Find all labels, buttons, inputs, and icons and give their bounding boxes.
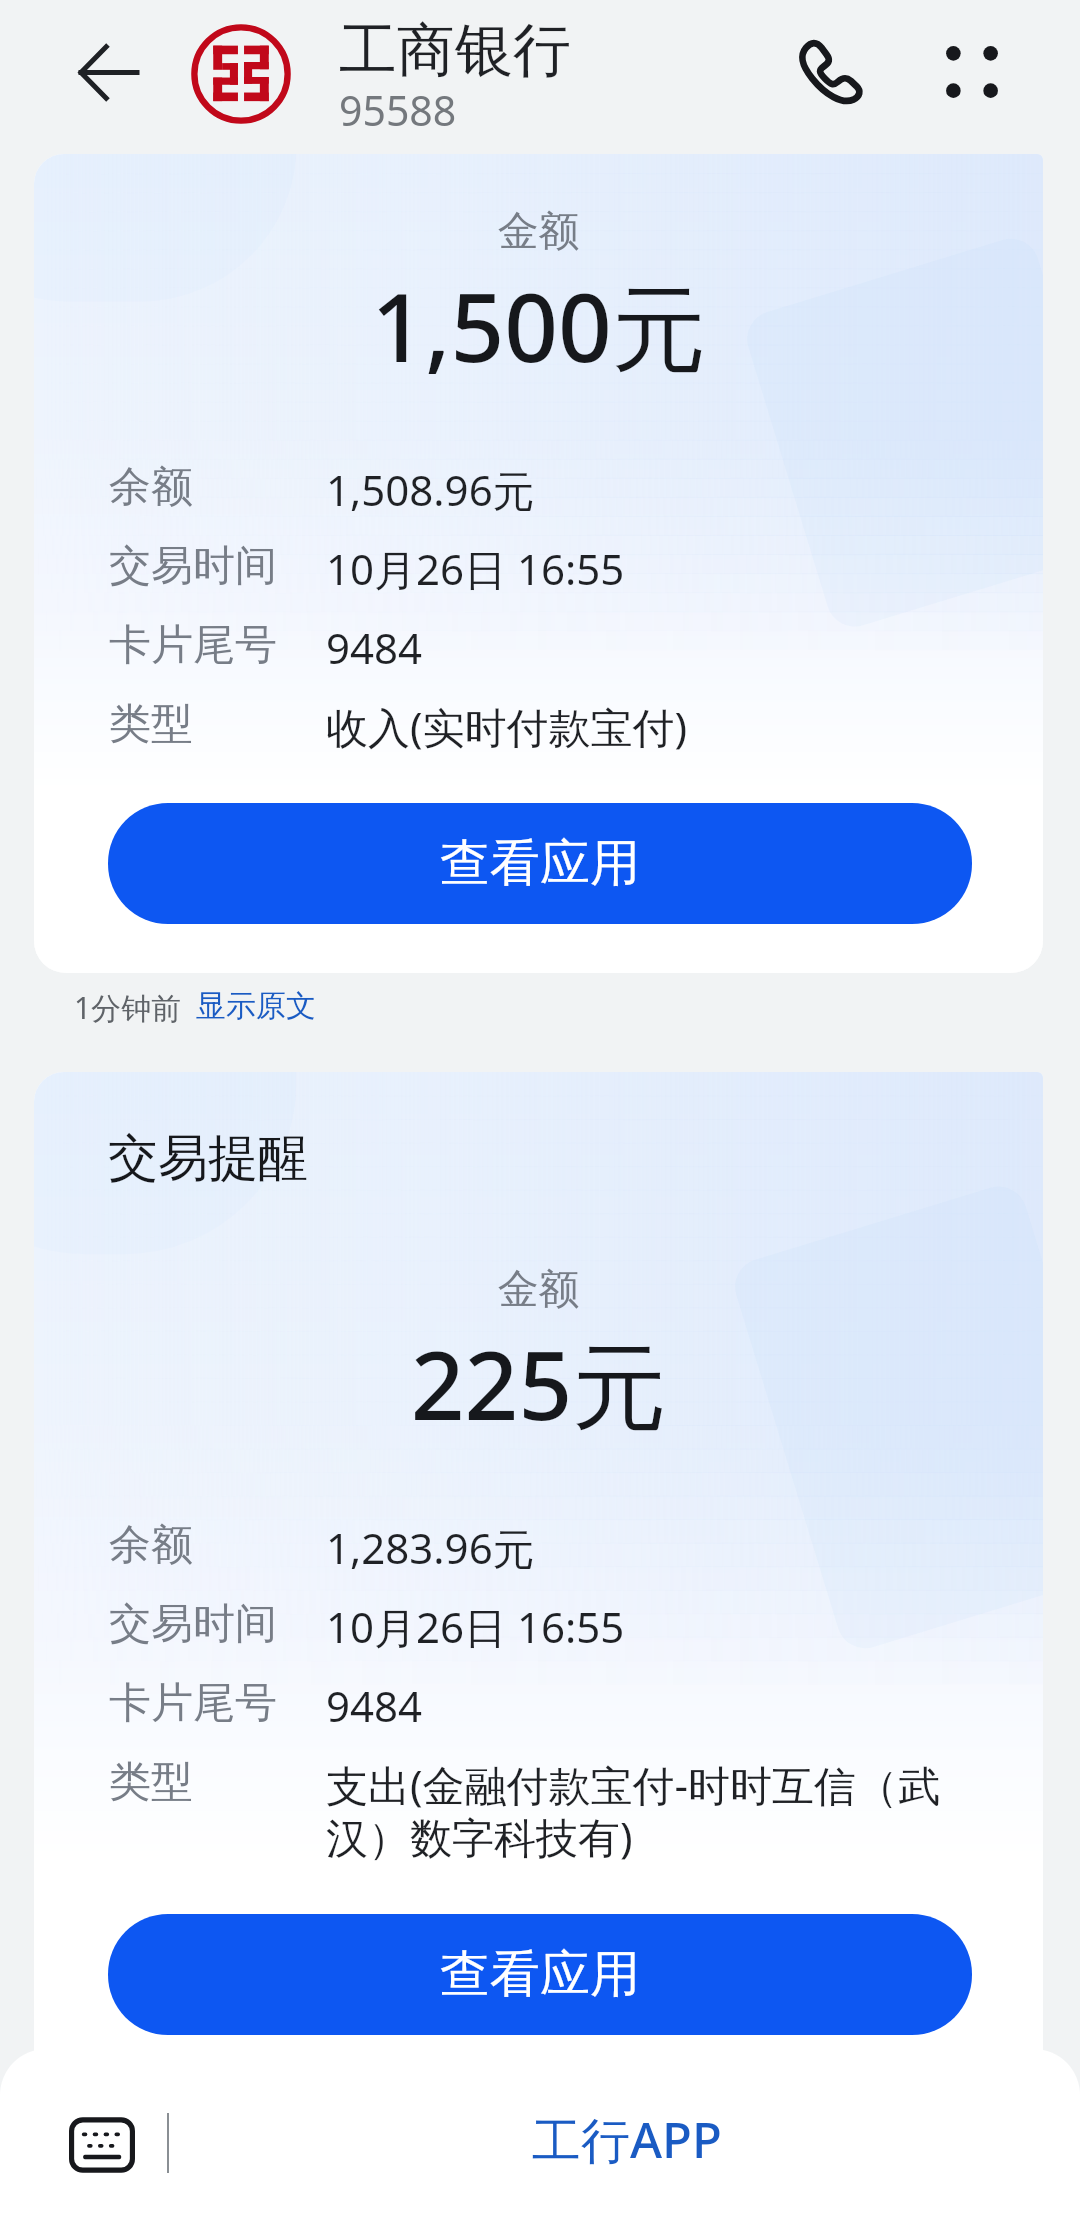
staticText: 卡片尾号: [109, 619, 277, 672]
staticText: 1,500元: [34, 262, 1043, 390]
staticText: 工商银行: [339, 14, 571, 87]
button[interactable]: Keyboard: [56, 2099, 148, 2191]
staticText: 9484: [326, 619, 423, 676]
staticText: 10月26日 16:55: [326, 540, 625, 597]
button[interactable]: 交易提醒: [34, 1072, 1043, 2084]
staticText: 类型: [109, 1756, 193, 1809]
button[interactable]: 金额: [34, 154, 1043, 973]
staticText: 225元: [34, 1320, 1043, 1448]
staticText: 1,283.96元: [326, 1519, 535, 1576]
staticText: 类型: [109, 698, 193, 751]
staticText: 9484: [326, 1677, 423, 1734]
staticText: 交易提醒: [108, 1127, 308, 1190]
button[interactable]: 显示原文: [196, 987, 316, 1025]
button[interactable]: 工行APP: [532, 2106, 722, 2173]
staticText: 支出(金融付款宝付-时时互信（武汉）数字科技有): [326, 1756, 963, 1866]
staticText: 卡片尾号: [109, 1677, 277, 1730]
staticText: 查看应用: [440, 832, 640, 895]
staticText: 交易时间: [109, 1598, 277, 1651]
staticText: 1分钟前: [74, 987, 182, 1028]
staticText: 1,508.96元: [326, 461, 535, 518]
staticText: 查看应用: [440, 1943, 640, 2006]
button[interactable]: Call: [780, 20, 876, 116]
staticText: 交易时间: [109, 540, 277, 593]
staticText: 10月26日 16:55: [326, 1598, 625, 1655]
staticText: 工行APP: [532, 2106, 722, 2173]
button[interactable]: More options: [924, 24, 1020, 120]
staticText: 金额: [34, 1264, 1043, 1316]
staticText: 收入(实时付款宝付): [326, 698, 688, 755]
button[interactable]: Back: [60, 24, 156, 120]
staticText: 95588: [339, 82, 457, 138]
staticText: 余额: [109, 461, 193, 514]
staticText: 金额: [34, 206, 1043, 258]
staticText: 余额: [109, 1519, 193, 1572]
button[interactable]: 查看应用: [108, 803, 972, 924]
button[interactable]: 查看应用: [108, 1914, 972, 2035]
